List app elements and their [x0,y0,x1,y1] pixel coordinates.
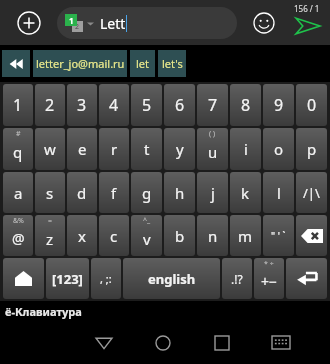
button[interactable]: 4 [99,84,129,126]
button[interactable]: a [3,172,33,213]
button[interactable]: s [35,172,65,213]
staticText: t [144,139,150,159]
button[interactable]: 2 [57,7,237,39]
button[interactable]: [123] [46,258,89,299]
staticText: m [238,226,253,246]
button[interactable]: * ÷ [254,258,284,299]
button[interactable]: Hide keyboard [251,321,310,364]
staticText: Lett [100,14,126,33]
button[interactable]: w [35,128,65,170]
button[interactable]: 2 [35,84,65,126]
button[interactable]: p [296,128,327,170]
button[interactable]: k [230,172,261,213]
button[interactable]: .!? [222,258,252,299]
button[interactable]: Emoji [250,9,278,37]
button[interactable]: letter_jo@mail.ru [33,50,127,77]
staticText: y [176,139,184,159]
button[interactable]: 5 [131,84,162,126]
staticText: 2 [75,22,80,32]
staticText: p [307,139,317,159]
staticText: .!? [231,271,243,287]
button[interactable]: Attach [14,8,44,38]
button[interactable]: = [35,215,65,256]
other: Shift [3,258,44,299]
button[interactable]: 7 [197,84,228,126]
staticText: j [211,183,215,203]
button[interactable]: Home [133,321,192,364]
button[interactable]: 3 [67,84,97,126]
button[interactable]: english [123,258,220,299]
staticText: i [244,139,248,159]
button[interactable]: m [230,215,261,256]
button[interactable]: let's [158,50,186,77]
staticText: b [175,226,185,246]
button[interactable]: x [67,215,97,256]
staticText: x [78,226,86,246]
button[interactable]: ( ) [197,128,228,170]
staticText: w [44,139,56,159]
staticText: letter_jo@mail.ru [36,56,125,71]
button[interactable]: 8 [230,84,261,126]
staticText: ^_ [143,216,151,226]
button[interactable]: i [230,128,261,170]
button[interactable]: &% [3,215,33,256]
button[interactable]: Recents [192,321,251,364]
button[interactable]: n [197,215,228,256]
button[interactable]: Back [75,321,133,364]
staticText: ( ) [209,129,216,139]
button[interactable]: 9 [263,84,294,126]
staticText: let's [162,56,183,71]
button[interactable]: t [131,128,162,170]
staticText: f [111,183,117,203]
staticText: v [143,229,151,249]
staticText: n [208,226,218,246]
staticText: 0 [307,94,317,116]
button[interactable]: e [67,128,97,170]
button[interactable]: 1 [3,84,33,126]
staticText: 6 [175,94,185,116]
button[interactable]: Send [292,10,324,42]
staticText: z [46,229,54,249]
button[interactable] [296,215,327,256]
button[interactable]: Shift [3,258,44,299]
staticText: l [277,183,281,203]
button[interactable]: 0 [296,84,327,126]
button[interactable]: y [164,128,195,170]
button[interactable]: b [164,215,195,256]
button[interactable]: 6 [164,84,195,126]
button[interactable]: # [3,128,33,170]
staticText: * ÷ [264,259,274,269]
button[interactable]: r [99,128,129,170]
staticText: +− [261,272,278,291]
button[interactable]: j [197,172,228,213]
staticText: g [142,183,152,203]
button[interactable]: o [263,128,294,170]
staticText: a [14,183,23,203]
button[interactable]: d [67,172,97,213]
staticText: s [46,183,54,203]
staticText: 156 / 1 [294,3,320,14]
staticText: " ' ` [271,229,286,243]
button[interactable]: ^_ [131,215,162,256]
button[interactable]: let [130,50,155,77]
button[interactable]: c [99,215,129,256]
staticText: ё-Клавиатура [5,304,82,319]
button[interactable]: " ' ` [263,215,294,256]
button[interactable]: g [131,172,162,213]
staticText: /|\ [303,184,320,202]
staticText: [123] [52,270,83,288]
button[interactable]: h [164,172,195,213]
staticText: u [208,142,218,162]
button[interactable]: /|\ [296,172,327,213]
button[interactable]: , ;: [91,258,121,299]
button[interactable]: Enter [286,258,327,299]
staticText: @ [12,229,25,248]
button[interactable]: l [263,172,294,213]
button[interactable]: f [99,172,129,213]
staticText: 5 [142,94,152,116]
staticText: 9 [274,94,284,116]
staticText: q [13,142,23,162]
button[interactable]: Previous suggestions [2,50,30,77]
other: Enter [286,258,327,299]
staticText: h [175,183,185,203]
